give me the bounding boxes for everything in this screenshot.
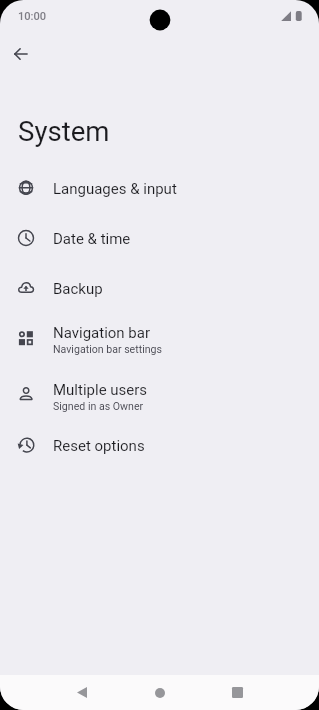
button[interactable]: Backup (0, 264, 319, 314)
button[interactable]: Recent apps (216, 675, 258, 710)
button[interactable]: Navigation bar (0, 314, 319, 371)
staticText: Languages & input (53, 180, 177, 198)
staticText: 10:00 (18, 10, 47, 23)
staticText: Backup (53, 280, 103, 298)
staticText: Reset options (53, 437, 145, 455)
button[interactable]: Back (61, 675, 103, 710)
button[interactable]: Navigate up (2, 35, 39, 72)
button[interactable]: Date & time (0, 214, 319, 264)
button[interactable]: Languages & input (0, 164, 319, 214)
button[interactable]: Reset options (0, 421, 319, 471)
staticText: Date & time (53, 230, 131, 248)
staticText: Signed in as Owner (53, 400, 144, 412)
staticText: Navigation bar (53, 324, 151, 342)
staticText: Multiple users (53, 381, 148, 399)
staticText: Navigation bar settings (53, 343, 163, 355)
button[interactable]: Home (139, 675, 181, 710)
button[interactable]: Multiple users (0, 371, 319, 421)
staticText: System (18, 115, 110, 147)
